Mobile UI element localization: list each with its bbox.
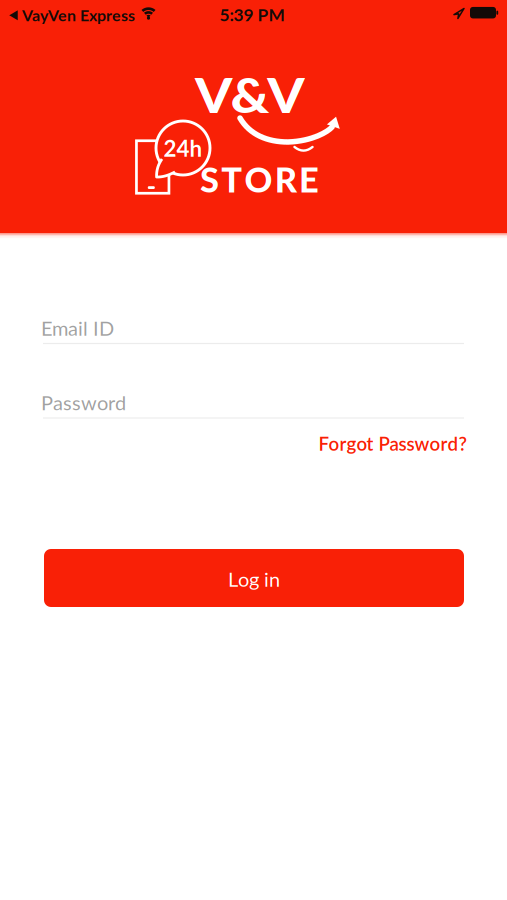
button[interactable]: Email ID bbox=[41, 314, 464, 346]
button[interactable]: Log in bbox=[44, 549, 464, 607]
staticText: Email ID bbox=[41, 316, 114, 340]
staticText: O bbox=[244, 159, 272, 200]
staticText: T bbox=[221, 159, 242, 200]
staticText: 5:39 PM bbox=[219, 4, 284, 25]
staticText: Password bbox=[41, 390, 126, 414]
staticText: 24h bbox=[163, 135, 202, 161]
staticText: S bbox=[200, 159, 219, 200]
staticText: V&V bbox=[200, 66, 299, 123]
button[interactable]: Forgot Password? bbox=[316, 432, 468, 454]
staticText: VayVen Express bbox=[22, 5, 135, 25]
staticText: E bbox=[299, 159, 319, 200]
button[interactable]: Password bbox=[41, 388, 464, 420]
staticText: Log in bbox=[228, 567, 280, 591]
staticText: R bbox=[275, 159, 297, 200]
staticText: Forgot Password? bbox=[318, 432, 466, 455]
